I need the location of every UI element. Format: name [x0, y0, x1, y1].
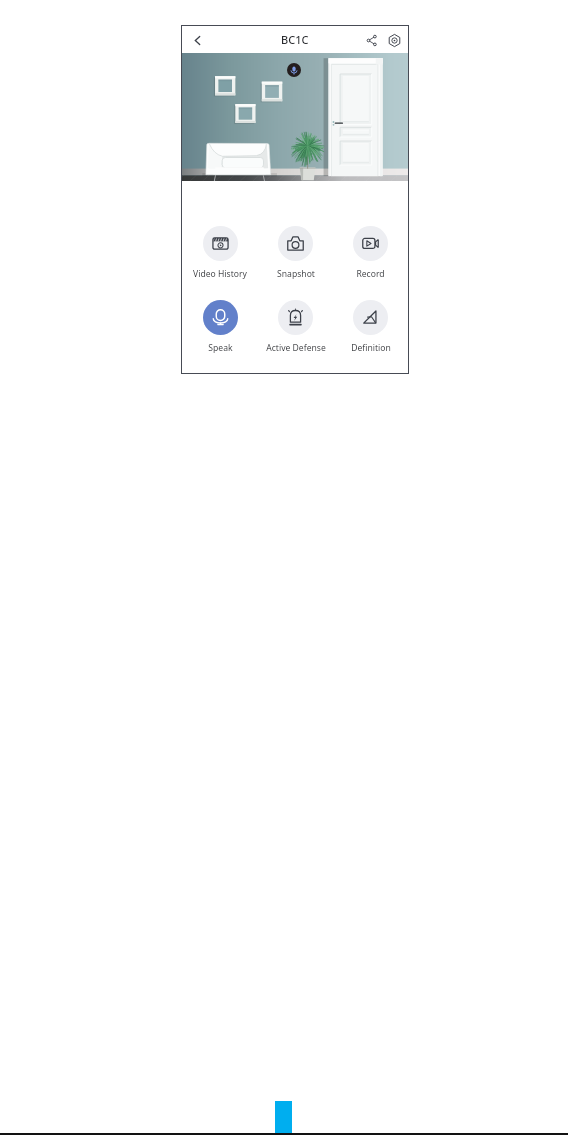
button[interactable]: Active Defense: [258, 300, 333, 354]
staticText: Snapshot: [277, 268, 315, 280]
button[interactable]: Microphone: [287, 63, 301, 77]
button[interactable]: Share: [361, 29, 383, 51]
button[interactable]: Snapshot: [258, 226, 333, 280]
button[interactable]: Back: [186, 29, 208, 51]
staticText: Speak: [208, 342, 233, 354]
staticText: Definition: [351, 342, 391, 354]
staticText: Active Defense: [266, 342, 326, 354]
button[interactable]: Speak: [182, 300, 258, 354]
button[interactable]: Definition: [333, 300, 408, 354]
staticText: BC1C: [281, 32, 309, 47]
button[interactable]: Record: [333, 226, 408, 280]
button[interactable]: Video History: [182, 226, 258, 280]
staticText: Record: [356, 268, 385, 280]
button[interactable]: Settings: [383, 29, 405, 51]
staticText: Video History: [193, 268, 247, 280]
